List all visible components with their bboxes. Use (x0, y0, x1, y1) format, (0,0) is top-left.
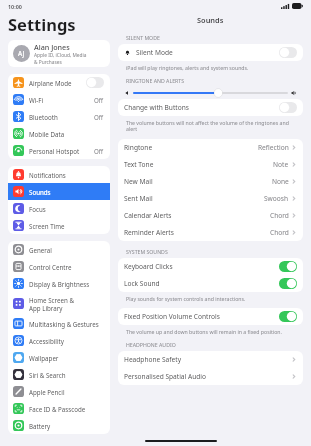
button[interactable]: Wi-Fi (8, 91, 110, 108)
staticText: Screen Time (29, 222, 104, 230)
staticText: SYSTEM SOUNDS (126, 248, 168, 255)
staticText: Note (273, 160, 289, 169)
staticText: Settings (8, 13, 76, 35)
staticText: SILENT MODE (126, 34, 160, 41)
button[interactable]: Personal Hotspot (8, 142, 110, 159)
staticText: Personal Hotspot (29, 147, 94, 155)
button[interactable]: Display & Brightness (8, 275, 110, 292)
button[interactable]: Text Tone (118, 156, 303, 173)
button[interactable]: Change with Buttons (279, 102, 297, 113)
staticText: Reflection (258, 143, 289, 152)
button[interactable]: Home Screen & (8, 292, 110, 315)
staticText: HEADPHONE AUDIO (126, 341, 176, 348)
staticText: Calendar Alerts (124, 211, 270, 220)
staticText: Fixed Position Volume Controls (124, 312, 279, 321)
staticText: Personalised Spatial Audio (124, 372, 292, 381)
button[interactable]: Silent Mode (279, 47, 297, 58)
staticText: App Library (29, 304, 63, 312)
button[interactable]: Wallpaper (8, 349, 110, 366)
staticText: Ringtone (124, 143, 258, 152)
button[interactable]: Face ID & Passcode (8, 400, 110, 417)
button[interactable]: Sounds (8, 183, 110, 200)
staticText: General (29, 246, 104, 254)
staticText: Mobile Data (29, 130, 104, 138)
staticText: Siri & Search (29, 371, 104, 379)
button[interactable]: Mobile Data (8, 125, 110, 142)
staticText: Off (94, 96, 104, 104)
staticText: None (272, 177, 289, 186)
staticText: Alan Jones (34, 42, 70, 52)
button[interactable]: Multitasking & Gestures (8, 315, 110, 332)
button[interactable]: Keyboard Clicks (118, 258, 303, 275)
button[interactable]: Fixed Position Volume Controls (118, 308, 303, 325)
button[interactable]: Silent Mode (118, 44, 303, 61)
button[interactable]: Lock Sound (118, 275, 303, 292)
button[interactable]: Calendar Alerts (118, 207, 303, 224)
staticText: Sounds (29, 188, 104, 196)
staticText: 10:00 (8, 3, 22, 10)
button[interactable]: Battery (8, 417, 110, 434)
button[interactable]: Apple Pencil (8, 383, 110, 400)
button[interactable]: Headphone Safety (118, 351, 303, 368)
button[interactable]: Accessibility (8, 332, 110, 349)
staticText: Lock Sound (124, 279, 279, 288)
staticText: Text Tone (124, 160, 273, 169)
button[interactable]: Sent Mail (118, 190, 303, 207)
staticText: Focus (29, 205, 104, 213)
button[interactable]: AJ (8, 40, 110, 67)
button[interactable]: Fixed Position Volume Controls (279, 311, 297, 322)
button[interactable]: Airplane Mode (8, 74, 110, 91)
staticText: Sounds (197, 15, 224, 25)
staticText: Airplane Mode (29, 79, 86, 87)
staticText: Multitasking & Gestures (29, 320, 104, 328)
staticText: Face ID & Passcode (29, 405, 104, 413)
button[interactable]: Siri & Search (8, 366, 110, 383)
staticText: Headphone Safety (124, 355, 292, 364)
staticText: Play sounds for system controls and inte… (126, 295, 246, 302)
staticText: RINGTONE AND ALERTS (126, 77, 184, 84)
staticText: Bluetooth (29, 113, 94, 121)
button[interactable]: Keyboard Clicks (279, 261, 297, 272)
button[interactable]: General (8, 241, 110, 258)
button[interactable]: New Mail (118, 173, 303, 190)
staticText: Home Screen & (29, 296, 74, 304)
button[interactable]: Screen Time (8, 217, 110, 234)
button[interactable]: Personalised Spatial Audio (118, 368, 303, 385)
staticText: Control Centre (29, 263, 104, 271)
button[interactable]: Focus (8, 200, 110, 217)
staticText: & Purchases (34, 59, 62, 66)
staticText: Change with Buttons (124, 103, 279, 112)
button[interactable]: Ringtone (118, 139, 303, 156)
staticText: Keyboard Clicks (124, 262, 279, 271)
staticText: Battery (29, 422, 104, 430)
staticText: Apple Pencil (29, 388, 104, 396)
staticText: Swoosh (264, 194, 289, 203)
staticText: Display & Brightness (29, 280, 104, 288)
staticText: iPad will play ringtones, alerts and sys… (126, 64, 249, 71)
button[interactable]: Lock Sound (279, 278, 297, 289)
button[interactable]: Control Centre (8, 258, 110, 275)
staticText: Reminder Alerts (124, 228, 270, 237)
staticText: Silent Mode (136, 48, 279, 57)
staticText: Wi-Fi (29, 96, 94, 104)
staticText: Wallpaper (29, 354, 104, 362)
staticText: Off (94, 147, 104, 155)
staticText: The volume up and down buttons will rema… (126, 328, 282, 335)
staticText: Apple ID, iCloud, Media (34, 52, 87, 59)
button[interactable]: Bluetooth (8, 108, 110, 125)
button[interactable]: Reminder Alerts (118, 224, 303, 241)
staticText: Accessibility (29, 337, 104, 345)
staticText: Chord (270, 228, 289, 237)
staticText: The volume buttons will not affect the v… (126, 119, 297, 133)
staticText: Off (94, 113, 104, 121)
staticText: New Mail (124, 177, 272, 186)
button[interactable]: Notifications (8, 166, 110, 183)
button[interactable]: Change with Buttons (118, 99, 303, 116)
staticText: Sent Mail (124, 194, 264, 203)
staticText: Notifications (29, 171, 104, 179)
button[interactable]: Airplane Mode (86, 77, 104, 88)
staticText: AJ (18, 49, 25, 58)
staticText: Chord (270, 211, 289, 220)
